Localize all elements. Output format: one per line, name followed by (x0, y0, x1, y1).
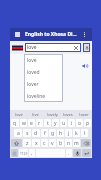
button[interactable]: h (57, 129, 64, 137)
button[interactable]: g (49, 129, 56, 137)
button[interactable]: a (14, 129, 22, 137)
staticText: loved (27, 69, 40, 76)
staticText: h (59, 130, 63, 137)
button[interactable]: Voice (73, 149, 81, 157)
staticText: live (32, 112, 39, 117)
staticText: q (13, 120, 17, 127)
button[interactable]: y (52, 119, 59, 127)
button[interactable]: Source language (12, 44, 23, 52)
staticText: r (38, 120, 41, 127)
staticText: , (31, 150, 33, 157)
button[interactable]: e (28, 119, 35, 127)
staticText: a (17, 130, 20, 137)
staticText: love (27, 44, 73, 51)
button[interactable]: b (57, 139, 64, 147)
button[interactable]: w (20, 119, 27, 127)
button[interactable]: loveline (24, 90, 63, 102)
button[interactable]: l (81, 129, 88, 137)
staticText: j (68, 130, 70, 137)
button[interactable]: t (44, 119, 51, 127)
button[interactable]: Voice input (83, 43, 90, 52)
staticText: love (15, 112, 23, 117)
staticText: b (59, 140, 63, 147)
button[interactable]: live (27, 110, 44, 118)
staticText: ?123 (20, 151, 28, 156)
staticText: l (84, 130, 86, 137)
button[interactable]: u (60, 119, 67, 127)
button[interactable]: n (65, 139, 72, 147)
button[interactable]: c (41, 139, 48, 147)
staticText: . (68, 150, 70, 157)
button[interactable]: x (32, 139, 40, 147)
staticText: g (51, 130, 55, 137)
staticText: lover (27, 81, 39, 88)
button[interactable]: , (29, 149, 35, 157)
button[interactable]: j (65, 129, 72, 137)
staticText: i (71, 120, 73, 127)
button[interactable]: f (41, 129, 48, 137)
button[interactable]: Menu (13, 30, 22, 39)
staticText: p (86, 120, 90, 127)
button[interactable]: q (11, 119, 19, 127)
staticText: f (44, 130, 46, 137)
staticText: y (54, 120, 57, 127)
staticText: w (22, 120, 26, 127)
button[interactable]: lovely (44, 110, 60, 118)
button[interactable]: p (84, 119, 91, 127)
staticText: v (51, 140, 54, 147)
button[interactable]: ?123 (19, 149, 28, 157)
staticText: lovely (47, 112, 58, 117)
button[interactable]: Shift (11, 139, 22, 147)
staticText: c (43, 140, 46, 147)
button[interactable]: Symbols (11, 149, 18, 157)
staticText: English to Xhosa Di... (25, 31, 80, 38)
button[interactable]: loved (24, 66, 63, 78)
staticText: z (26, 140, 29, 147)
button[interactable]: Enter (82, 149, 91, 157)
staticText: d (34, 130, 38, 137)
button[interactable]: Speak (81, 62, 89, 70)
staticText: x (35, 140, 38, 147)
button[interactable]: love (24, 54, 63, 66)
staticText: lover (79, 112, 89, 117)
staticText: k (75, 130, 78, 137)
button[interactable]: More options (80, 30, 89, 39)
staticText: s (26, 130, 29, 137)
button[interactable]: loves (60, 110, 76, 118)
button[interactable]: Clear (73, 45, 79, 51)
button[interactable]: m (73, 139, 80, 147)
button[interactable]: o (76, 119, 83, 127)
button[interactable]: . (66, 149, 72, 157)
staticText: n (67, 140, 71, 147)
staticText: t (47, 120, 49, 127)
button[interactable]: z (23, 139, 31, 147)
staticText: loves (63, 112, 73, 117)
staticText: m (74, 140, 79, 147)
button[interactable]: v (49, 139, 56, 147)
button[interactable]: love (25, 43, 81, 52)
button[interactable]: k (73, 129, 80, 137)
staticText: loveline (27, 93, 46, 100)
button[interactable]: lover (76, 110, 92, 118)
button[interactable]: s (23, 129, 31, 137)
button[interactable]: love (10, 110, 27, 118)
button[interactable]: Backspace (81, 139, 91, 147)
staticText: e (30, 120, 33, 127)
button[interactable]: d (32, 129, 40, 137)
button[interactable]: r (36, 119, 43, 127)
button[interactable]: lover (24, 78, 63, 90)
staticText: o (78, 120, 82, 127)
button[interactable]: i (68, 119, 75, 127)
staticText: love (27, 57, 37, 64)
staticText: u (62, 120, 66, 127)
